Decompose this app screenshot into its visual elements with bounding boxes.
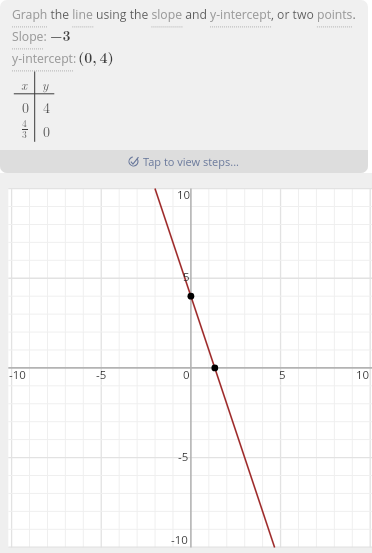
staticText: 5 [279,367,286,383]
other: View steps [128,156,139,167]
staticText: Tap to view steps... [143,154,240,169]
staticText: 10 [356,367,370,383]
staticText: 10 [177,187,191,203]
staticText: 3 [22,127,27,140]
button[interactable]: View steps [0,150,368,173]
staticText: 0 [183,367,190,383]
staticText: −3 [50,25,71,45]
staticText: 0 [43,121,50,141]
staticText: -10 [9,367,26,383]
staticText: y [42,75,49,93]
staticText: 4 [22,116,27,129]
staticText: -5 [96,367,107,383]
button[interactable] [12,50,77,72]
staticText: 4 [43,97,50,117]
staticText: -5 [178,449,189,465]
button[interactable] [12,28,47,50]
staticText: 5 [183,269,190,285]
staticText: x [21,75,28,93]
staticText: (0, 4) [78,47,114,67]
staticText: 0 [22,97,29,117]
staticText: -10 [171,532,188,548]
